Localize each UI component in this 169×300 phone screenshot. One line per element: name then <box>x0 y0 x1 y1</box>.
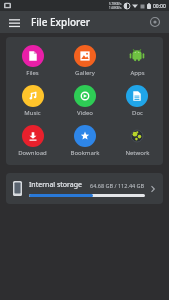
button[interactable]: Video <box>59 84 111 118</box>
staticText: 1.68KB/s <box>109 6 122 10</box>
button[interactable]: Apps <box>111 44 163 78</box>
button[interactable]: Internal storage <box>6 173 163 204</box>
button[interactable]: Music <box>6 84 59 118</box>
staticText: Files <box>26 69 39 77</box>
staticText: Doc <box>132 109 143 117</box>
button[interactable]: Bookmark <box>59 124 111 158</box>
staticText: 5.78KB/s <box>109 2 122 6</box>
staticText: Music <box>24 109 41 117</box>
button[interactable]: Files <box>6 44 59 78</box>
staticText: Apps <box>130 69 145 77</box>
staticText: File Explorer <box>31 15 91 29</box>
button[interactable]: Gallery <box>59 44 111 78</box>
button[interactable]: Network <box>111 124 163 158</box>
button[interactable]: Download <box>6 124 59 158</box>
staticText: 64.68 GB / 112.44 GB <box>90 182 145 189</box>
staticText: Download <box>18 149 47 157</box>
staticText: Video <box>77 109 93 117</box>
staticText: Bookmark <box>70 149 100 157</box>
button[interactable]: Settings <box>145 12 165 32</box>
button[interactable]: Doc <box>111 84 163 118</box>
staticText: Network <box>125 149 150 157</box>
staticText: Internal storage <box>29 180 82 190</box>
button[interactable]: Open navigation menu <box>3 11 25 33</box>
staticText: 00:00 <box>153 3 166 10</box>
staticText: Gallery <box>75 69 95 77</box>
